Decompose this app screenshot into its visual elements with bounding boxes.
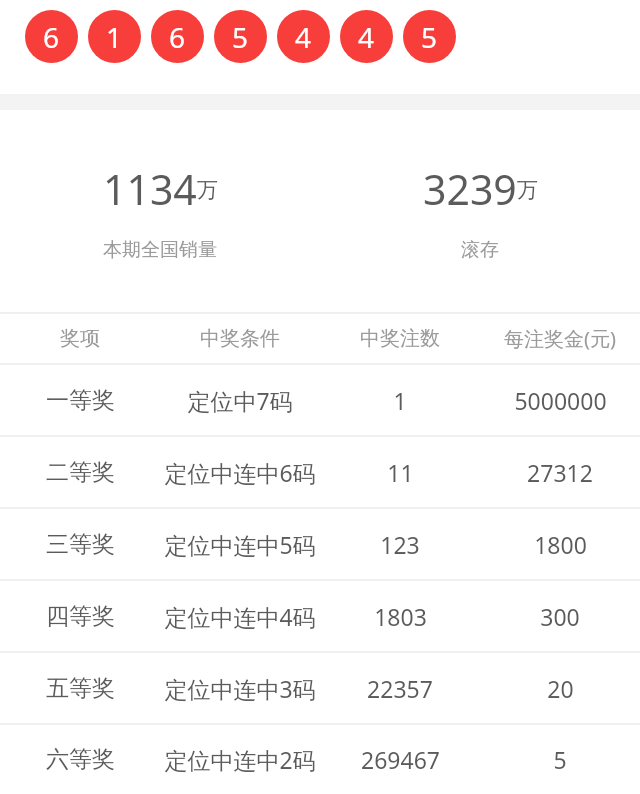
staticText: 11 [387, 457, 414, 488]
button[interactable]: 开奖号码 4 [340, 10, 393, 63]
staticText: 定位中7码 [187, 385, 293, 416]
staticText: 六等奖 [46, 745, 115, 774]
button[interactable]: 二等奖 [0, 437, 640, 507]
button[interactable]: 开奖号码 6 [151, 10, 204, 63]
staticText: 269467 [361, 744, 440, 775]
staticText: 1803 [374, 601, 427, 632]
staticText: 每注奖金(元) [504, 325, 616, 352]
staticText: 5 [553, 744, 567, 775]
staticText: 3239 [423, 161, 517, 217]
staticText: 定位中连中5码 [164, 529, 316, 560]
button[interactable]: 开奖号码 5 [403, 10, 456, 63]
staticText: 123 [380, 529, 420, 560]
button[interactable]: 开奖号码 1 [88, 10, 141, 63]
staticText: 万 [197, 177, 218, 203]
staticText: 一等奖 [46, 386, 115, 415]
staticText: 滚存 [461, 238, 499, 262]
button[interactable]: 四等奖 [0, 581, 640, 651]
button[interactable]: 开奖号码 4 [277, 10, 330, 63]
staticText: 五等奖 [46, 674, 115, 703]
staticText: 中奖条件 [200, 326, 280, 351]
button[interactable]: 六等奖 [0, 725, 640, 794]
staticText: 中奖注数 [360, 326, 440, 351]
staticText: 定位中连中4码 [164, 601, 316, 632]
staticText: 1134 [103, 161, 197, 217]
staticText: 1 [106, 18, 123, 56]
staticText: 4 [295, 18, 312, 56]
staticText: 二等奖 [46, 458, 115, 487]
staticText: 27312 [527, 457, 593, 488]
staticText: 22357 [367, 673, 433, 704]
staticText: 5000000 [514, 385, 607, 416]
staticText: 4 [358, 18, 375, 56]
staticText: 定位中连中6码 [164, 457, 316, 488]
staticText: 6 [43, 18, 60, 56]
staticText: 1800 [534, 529, 587, 560]
staticText: 三等奖 [46, 530, 115, 559]
staticText: 四等奖 [46, 602, 115, 631]
staticText: 奖项 [60, 326, 100, 351]
button[interactable]: 开奖号码 6 [25, 10, 78, 63]
button[interactable]: 三等奖 [0, 509, 640, 579]
button[interactable]: 开奖号码 5 [214, 10, 267, 63]
staticText: 20 [547, 673, 574, 704]
staticText: 定位中连中3码 [164, 673, 316, 704]
staticText: 6 [169, 18, 186, 56]
button[interactable]: 1134 [0, 110, 320, 262]
staticText: 本期全国销量 [103, 238, 217, 262]
staticText: 300 [540, 601, 580, 632]
staticText: 5 [232, 18, 249, 56]
staticText: 5 [421, 18, 438, 56]
staticText: 万 [517, 177, 538, 203]
button[interactable]: 3239 [320, 110, 640, 262]
staticText: 1 [393, 385, 407, 416]
button[interactable]: 五等奖 [0, 653, 640, 723]
button[interactable]: 一等奖 [0, 365, 640, 435]
staticText: 定位中连中2码 [164, 744, 316, 775]
